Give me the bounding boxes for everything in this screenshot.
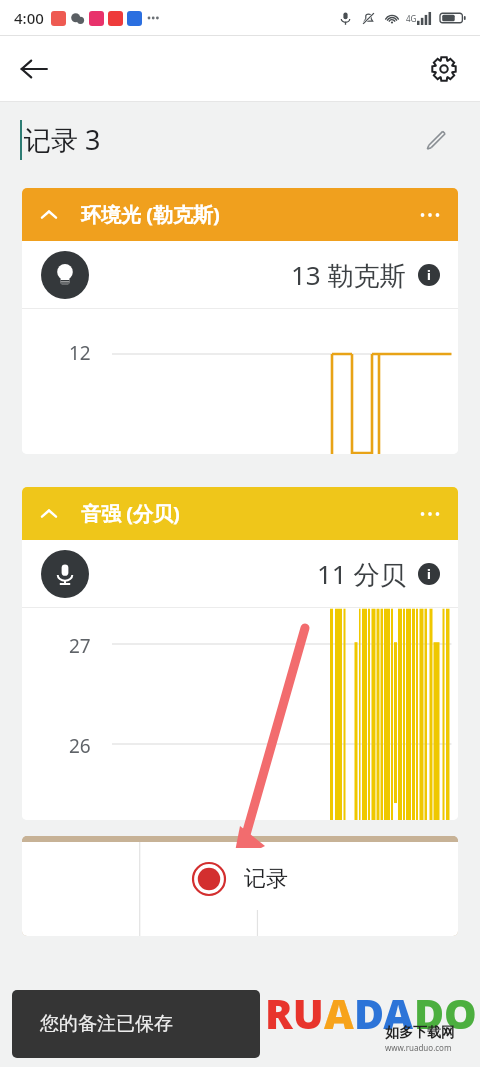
staticText: 记录 3 [24,121,101,158]
staticText: DA [354,985,414,1041]
staticText: DO [414,985,477,1041]
staticText: i [427,266,431,284]
staticText: 4:00 [14,8,44,28]
staticText: RU [265,985,324,1041]
button[interactable]: Info [418,563,440,585]
staticText: 如多下载网 [385,1024,455,1042]
button[interactable] [41,550,89,598]
staticText: 4G [406,13,417,24]
button[interactable] [41,251,89,299]
button[interactable]: Edit [414,118,458,162]
button[interactable]: More options [408,193,452,237]
staticText: 音强 (分贝) [81,500,180,527]
staticText: 27 [69,633,91,659]
staticText: 记录 [244,865,288,893]
button[interactable]: Info [418,264,440,286]
staticText: A [324,985,354,1041]
button[interactable]: 记录 [160,848,320,910]
button[interactable]: 音强 (分贝) [22,487,458,540]
staticText: 13 勒克斯 [291,257,406,293]
staticText: i [427,565,431,583]
button[interactable]: More options [408,492,452,536]
staticText: 环境光 (勒克斯) [81,201,220,228]
staticText: 12 [69,340,91,366]
staticText: 11 分贝 [317,556,406,592]
staticText: 26 [69,733,91,759]
button[interactable]: 环境光 (勒克斯) [22,188,458,241]
staticText: www.ruaduo.com [385,1042,452,1053]
staticText: 您的备注已保存 [40,1012,173,1036]
button[interactable]: Back [8,43,60,95]
button[interactable]: Settings [418,43,470,95]
